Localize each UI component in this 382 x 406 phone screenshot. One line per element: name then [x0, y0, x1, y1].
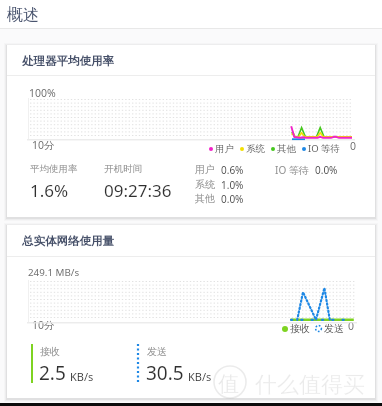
- staticText: 什么值得买: [255, 371, 365, 399]
- button[interactable]: 处理器平均使用率: [7, 45, 375, 59]
- staticText: KB/s: [70, 369, 94, 384]
- staticText: 0.6%: [221, 163, 244, 177]
- staticText: 开机时间: [104, 163, 142, 175]
- staticText: 其他: [195, 192, 215, 205]
- staticText: 接收: [290, 322, 310, 335]
- staticText: 系统: [246, 143, 265, 155]
- staticText: 10分: [32, 138, 55, 152]
- staticText: 0: [348, 319, 355, 333]
- staticText: 概述: [7, 5, 39, 25]
- staticText: 值: [218, 371, 239, 397]
- staticText: 0.0%: [221, 192, 244, 206]
- staticText: KB/s: [188, 369, 212, 384]
- staticText: 平均使用率: [30, 163, 78, 175]
- staticText: 249.1 MB/s: [28, 266, 80, 279]
- staticText: 10分: [32, 318, 55, 332]
- staticText: 接收: [40, 345, 60, 358]
- staticText: 发送: [324, 322, 344, 335]
- staticText: 用户: [195, 163, 215, 176]
- staticText: 2.5: [39, 360, 66, 386]
- staticText: 发送: [147, 345, 167, 358]
- staticText: 30.5: [146, 360, 184, 386]
- staticText: 1.6%: [30, 179, 69, 202]
- staticText: 用户: [215, 143, 234, 155]
- staticText: 处理器平均使用率: [22, 54, 114, 68]
- staticText: 0.0%: [315, 163, 338, 177]
- staticText: 0: [350, 139, 357, 153]
- staticText: IO 等待: [275, 163, 309, 177]
- staticText: 1.0%: [221, 178, 244, 192]
- staticText: 总实体网络使用量: [22, 234, 114, 248]
- staticText: 100%: [29, 86, 56, 100]
- staticText: 系统: [195, 178, 215, 191]
- staticText: IO 等待: [308, 142, 341, 155]
- staticText: 其他: [277, 143, 296, 155]
- staticText: 09:27:36: [104, 179, 172, 202]
- button[interactable]: 总实体网络使用量: [7, 225, 375, 239]
